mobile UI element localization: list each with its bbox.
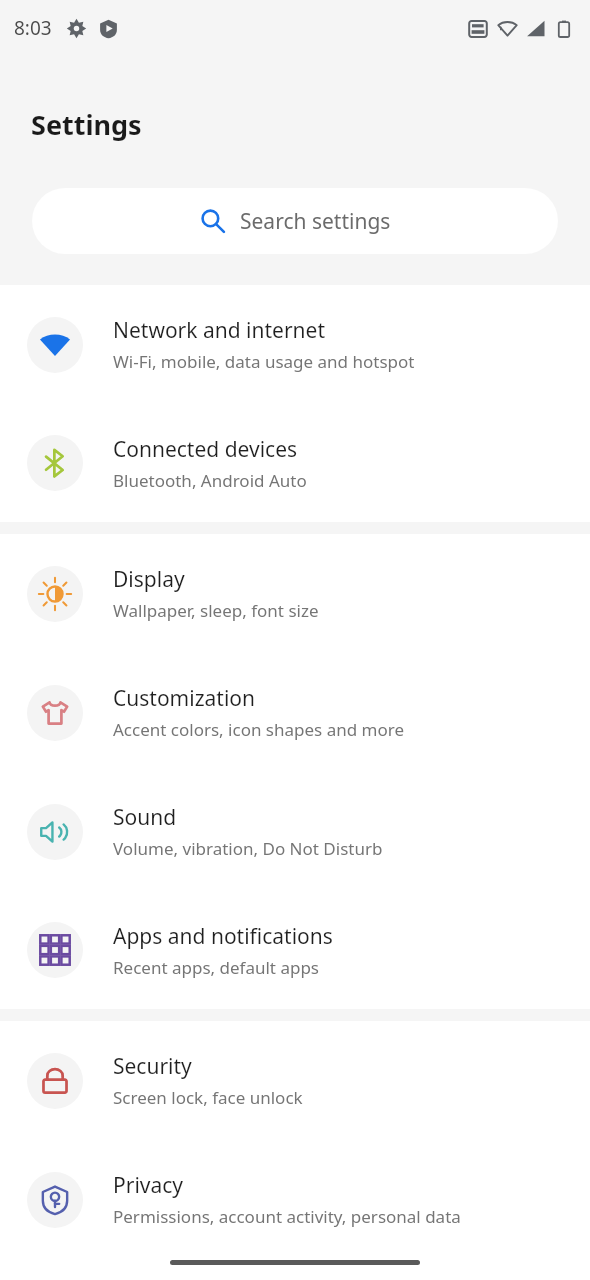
staticText: Sound — [113, 803, 177, 832]
staticText: Display — [113, 565, 185, 594]
staticText: Volume, vibration, Do Not Disturb — [113, 837, 383, 860]
staticText: Recent apps, default apps — [113, 956, 320, 979]
staticText: Wallpaper, sleep, font size — [113, 599, 319, 622]
button[interactable]: Search settings — [32, 188, 558, 254]
staticText: Accent colors, icon shapes and more — [113, 718, 405, 741]
staticText: Privacy — [113, 1171, 184, 1200]
button[interactable]: Privacy — [0, 1140, 590, 1259]
staticText: Search settings — [240, 207, 391, 236]
button[interactable]: Sound — [0, 772, 590, 891]
staticText: Apps and notifications — [113, 922, 333, 951]
staticText: Permissions, account activity, personal … — [113, 1205, 461, 1228]
button[interactable]: Apps and notifications — [0, 891, 590, 1009]
staticText: Security — [113, 1052, 192, 1081]
staticText: Wi-Fi, mobile, data usage and hotspot — [113, 350, 415, 373]
staticText: Settings — [31, 106, 142, 143]
button[interactable]: Display — [0, 534, 590, 653]
button[interactable]: Security — [0, 1021, 590, 1140]
staticText: Bluetooth, Android Auto — [113, 469, 307, 492]
staticText: 8:03 — [14, 15, 52, 41]
button[interactable]: Network and internet — [0, 285, 590, 404]
button[interactable]: Connected devices — [0, 404, 590, 522]
staticText: Network and internet — [113, 316, 325, 345]
staticText: Customization — [113, 684, 255, 713]
staticText: Screen lock, face unlock — [113, 1086, 303, 1109]
button[interactable]: Customization — [0, 653, 590, 772]
staticText: Connected devices — [113, 435, 298, 464]
